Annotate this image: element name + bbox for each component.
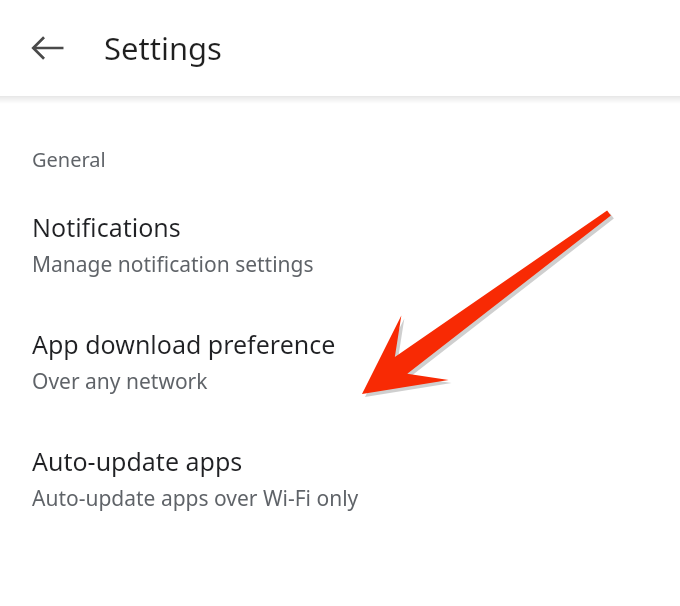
staticText: Notifications bbox=[32, 210, 181, 244]
staticText: Over any network bbox=[32, 367, 208, 396]
button[interactable]: Auto-update apps bbox=[0, 444, 680, 513]
staticText: Auto-update apps bbox=[32, 444, 243, 478]
button[interactable]: App download preference bbox=[0, 327, 680, 396]
staticText: Manage notification settings bbox=[32, 250, 314, 279]
button[interactable]: Notifications bbox=[0, 210, 680, 279]
staticText: Settings bbox=[104, 27, 222, 69]
staticText: General bbox=[32, 146, 106, 173]
staticText: Auto-update apps over Wi-Fi only bbox=[32, 484, 359, 513]
button[interactable]: Back bbox=[20, 20, 76, 76]
staticText: App download preference bbox=[32, 327, 336, 361]
